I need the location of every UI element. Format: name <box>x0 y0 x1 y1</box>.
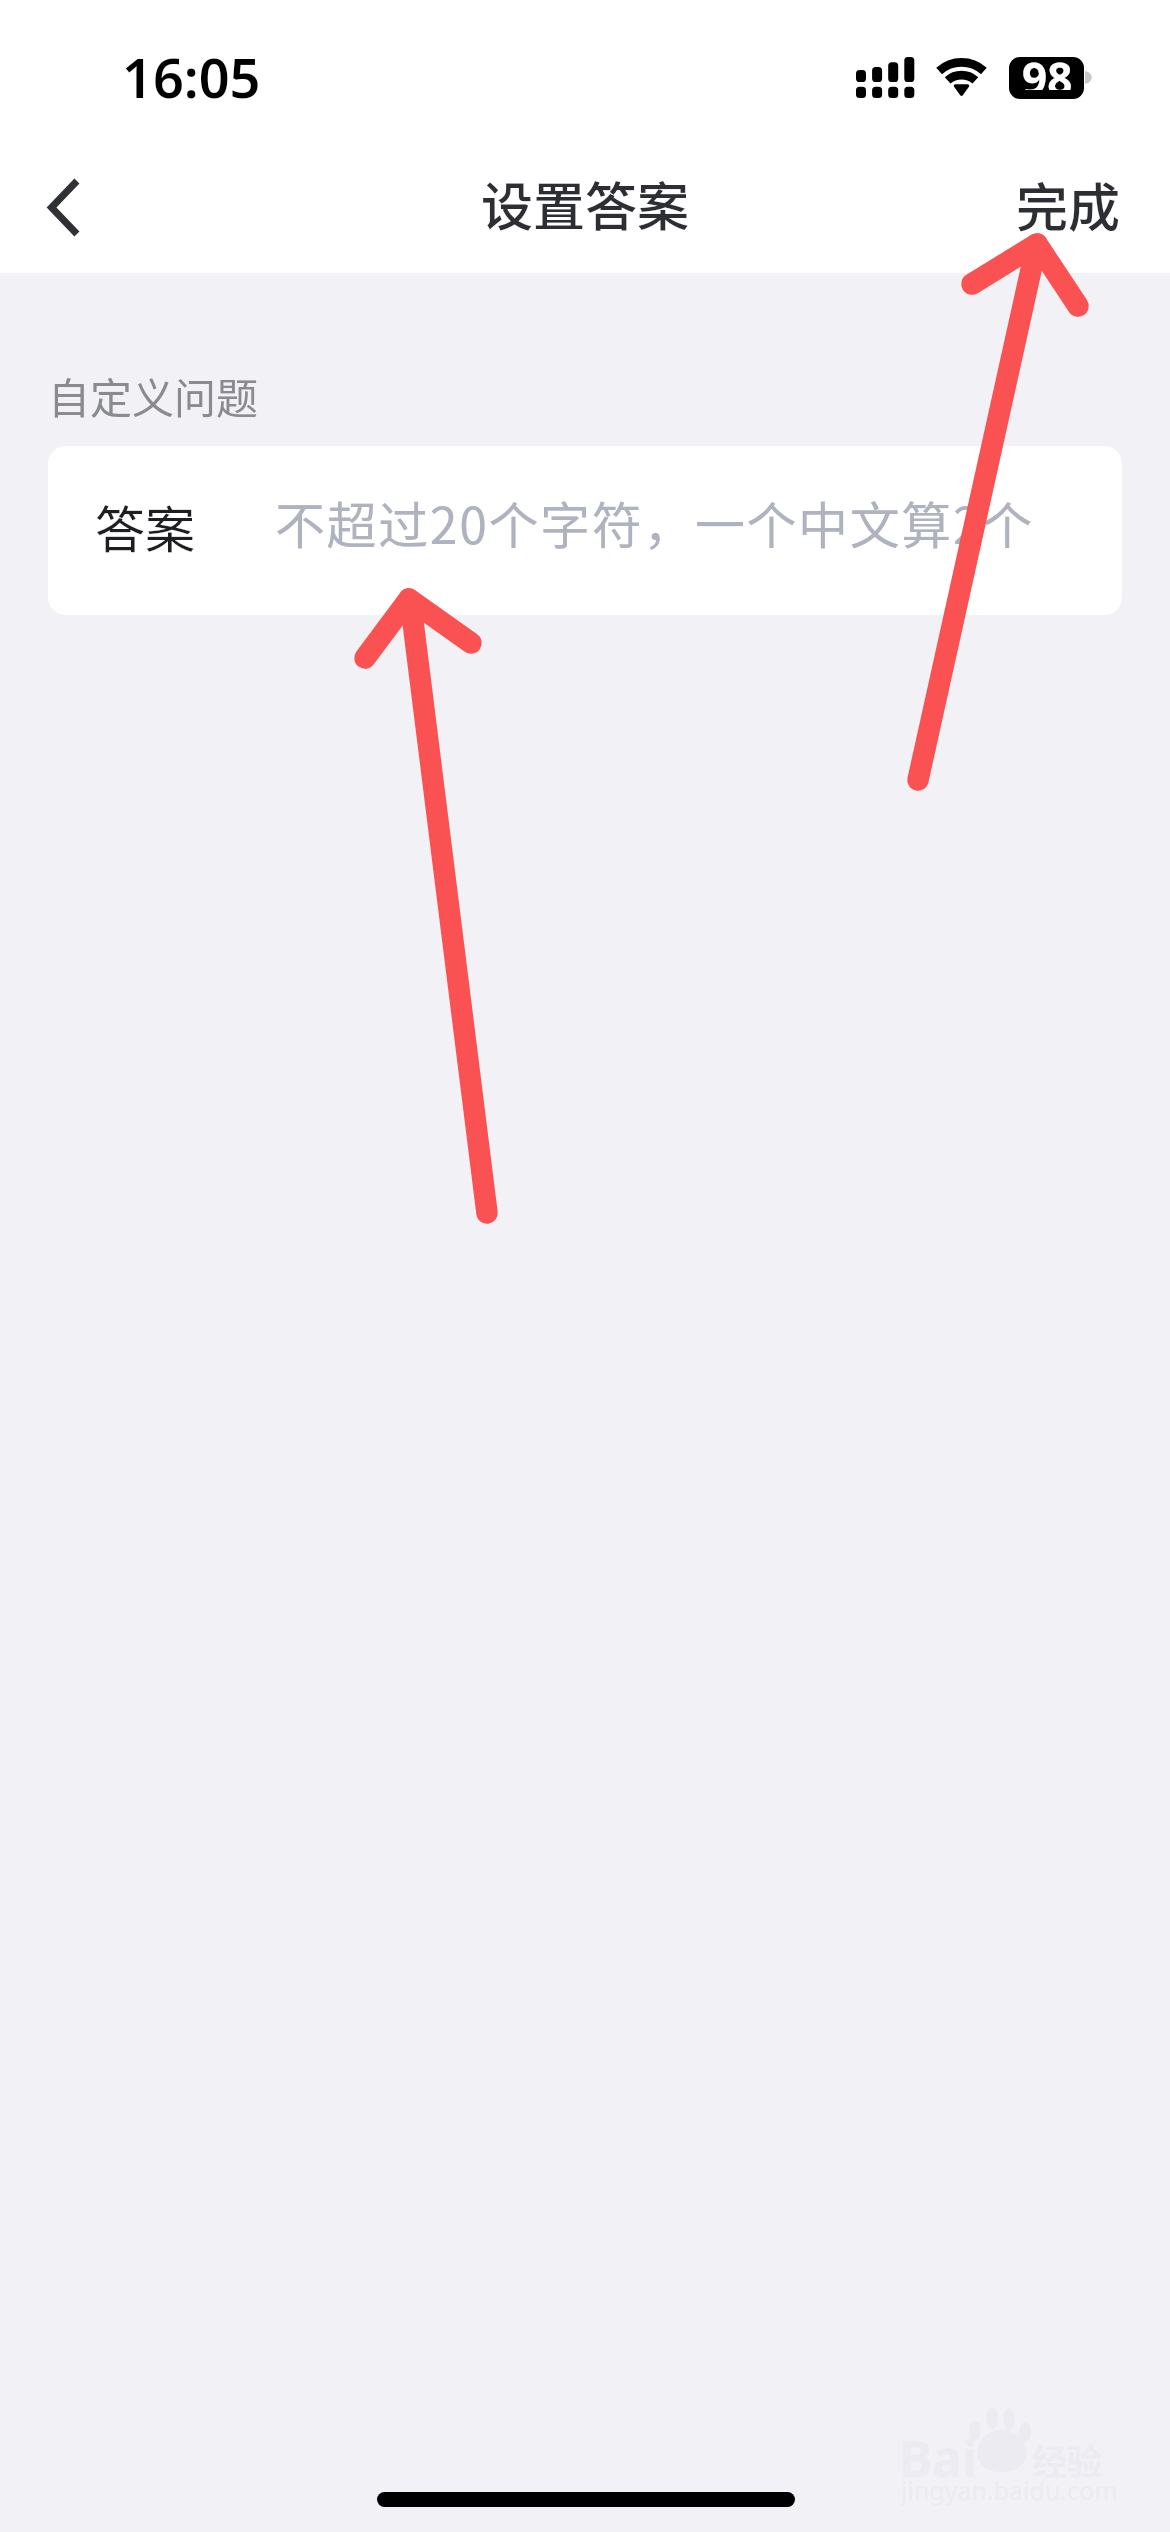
staticText: 完成 <box>1016 167 1121 242</box>
staticText: 16:05 <box>122 40 261 114</box>
other: Battery 98 percent <box>1009 57 1092 99</box>
button[interactable]: Back <box>3 147 123 267</box>
staticText: 98 <box>1022 48 1073 90</box>
staticText: 设置答案 <box>0 166 1170 241</box>
staticText: 答案 <box>95 490 195 562</box>
other: Cellular signal <box>856 57 914 99</box>
other: Wi-Fi <box>936 56 988 96</box>
staticText: 自定义问题 <box>48 365 259 426</box>
button[interactable]: 完成 <box>994 142 1142 266</box>
staticText: 不超过20个字符，一个中文算2个 <box>275 486 1034 558</box>
button[interactable]: 答案 <box>48 446 1122 615</box>
